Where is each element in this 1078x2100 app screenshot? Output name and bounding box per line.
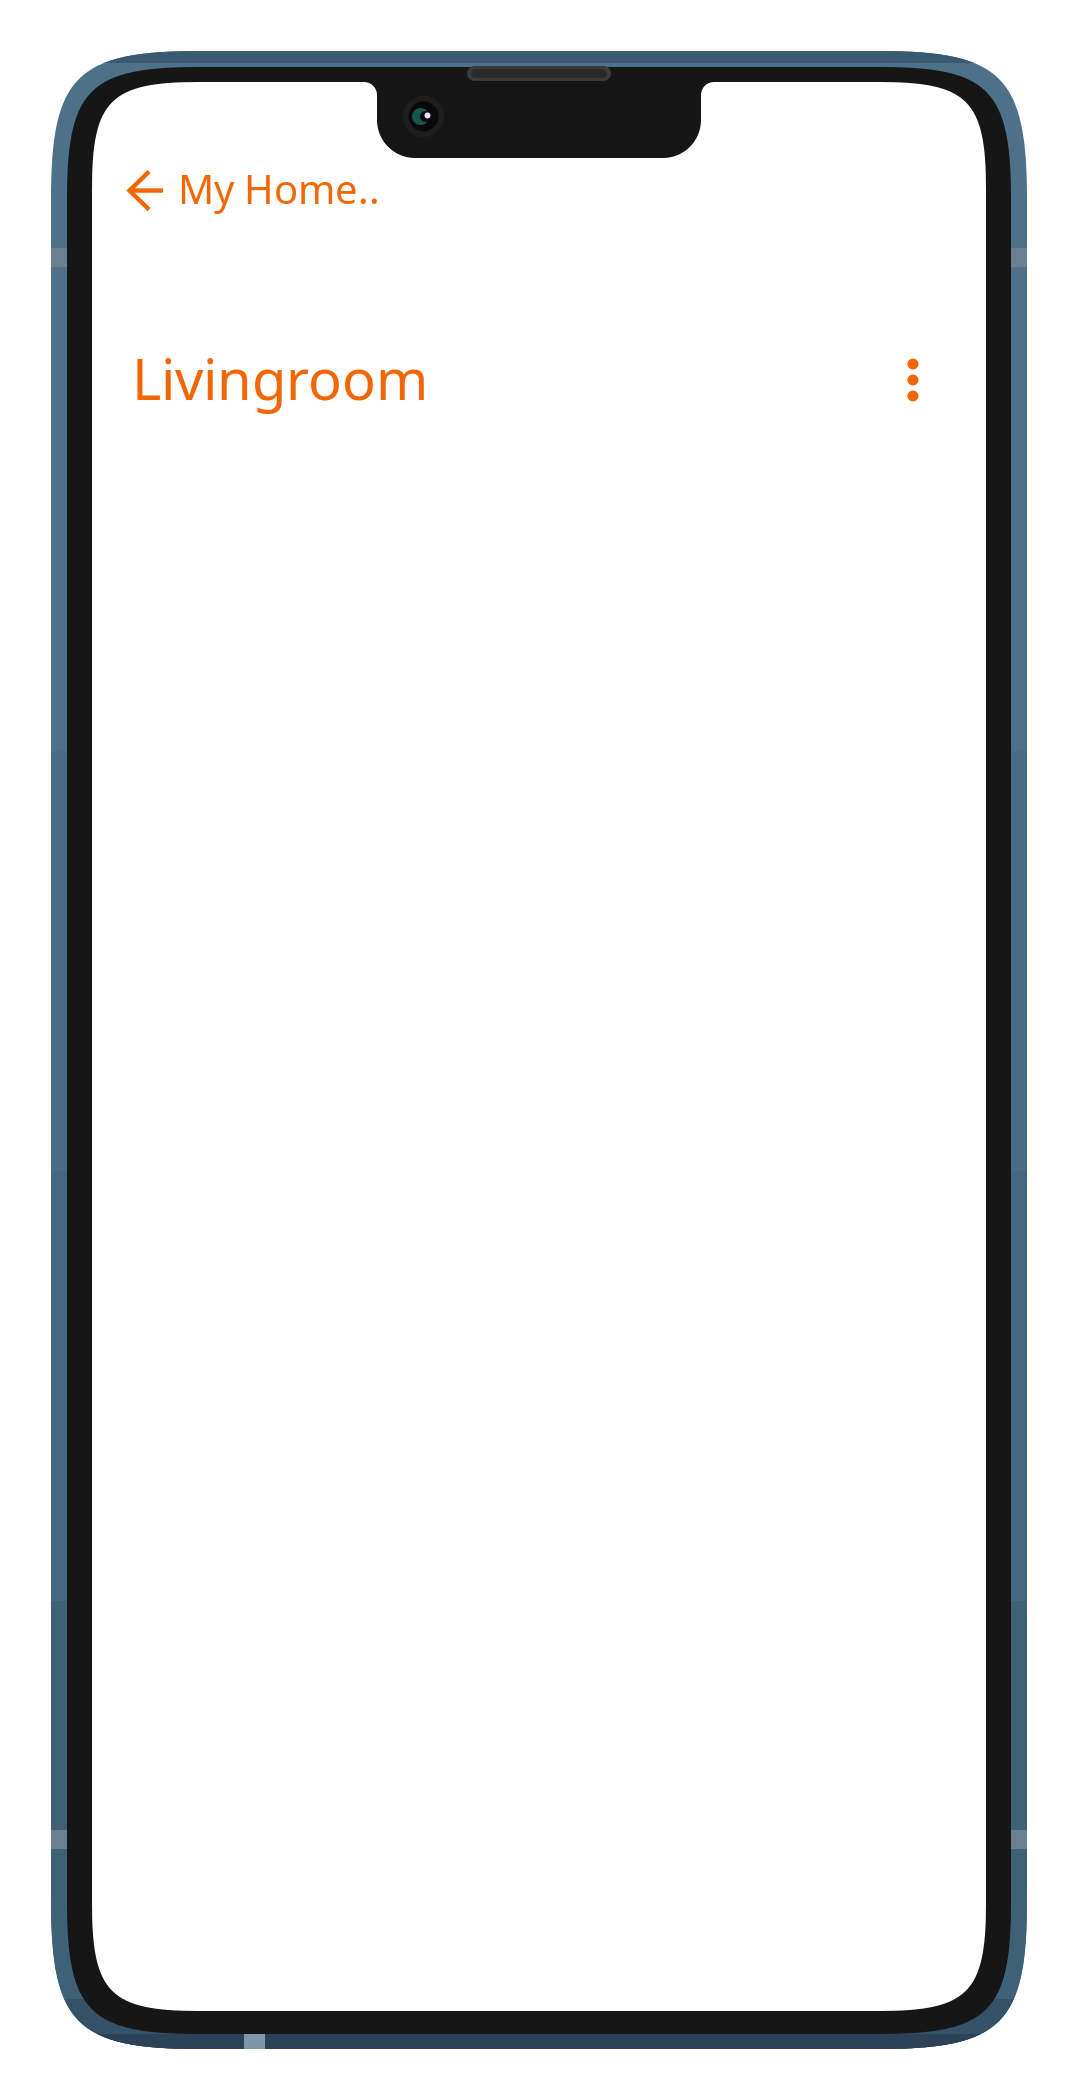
button[interactable]: Livingroom <box>124 331 436 425</box>
staticText: My Home.. <box>178 162 380 215</box>
button[interactable]: My Home.. <box>113 152 394 225</box>
button[interactable]: More options <box>878 338 948 422</box>
staticText: Livingroom <box>132 341 428 415</box>
